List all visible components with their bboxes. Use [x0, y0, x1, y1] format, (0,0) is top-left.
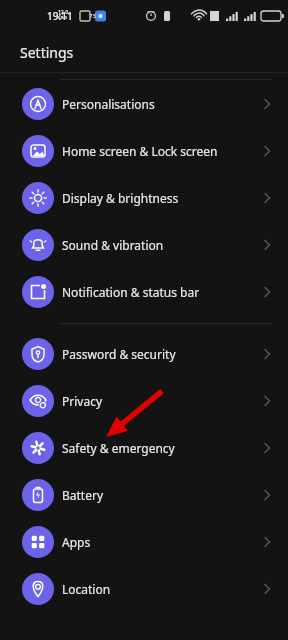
button[interactable]: Home screen & Lock screen	[0, 127, 288, 174]
staticText: Location	[62, 581, 111, 597]
button[interactable]: Display & brightness	[0, 174, 288, 221]
staticText: KB/S	[58, 15, 68, 20]
other: Open Sound & vibration	[260, 238, 274, 252]
other: Open Home screen & Lock screen	[260, 144, 274, 158]
other: Open Notification & status bar	[260, 285, 274, 299]
staticText: 19:11	[47, 9, 73, 23]
staticText: 73	[89, 12, 96, 20]
staticText: Battery	[62, 487, 104, 503]
other: Open Location	[260, 582, 274, 596]
other: Open Safety & emergency	[260, 441, 274, 455]
staticText: Privacy	[62, 393, 103, 409]
staticText: Password & security	[62, 346, 176, 362]
staticText: Notification & status bar	[62, 284, 200, 300]
other: Open Apps	[260, 535, 274, 549]
button[interactable]: Notification & status bar	[0, 268, 288, 315]
staticText: Home screen & Lock screen	[62, 143, 218, 159]
button[interactable]: Privacy	[0, 377, 288, 424]
other: Open Battery	[260, 488, 274, 502]
staticText: Apps	[62, 534, 91, 550]
button[interactable]: Location	[0, 565, 288, 612]
staticText: Display & brightness	[62, 190, 179, 206]
button[interactable]: Personalisations	[0, 80, 288, 127]
button[interactable]: Password & security	[0, 330, 288, 377]
button[interactable]: Apps	[0, 518, 288, 565]
staticText: Safety & emergency	[62, 440, 175, 456]
staticText: 12.0	[58, 9, 68, 16]
other: Open Privacy	[260, 394, 274, 408]
staticText: Personalisations	[62, 96, 155, 112]
button[interactable]: Sound & vibration	[0, 221, 288, 268]
staticText: Settings	[20, 43, 74, 62]
other: Open Personalisations	[260, 97, 274, 111]
other: Open Display & brightness	[260, 191, 274, 205]
button[interactable]: Battery	[0, 471, 288, 518]
button[interactable]: Safety & emergency	[0, 424, 288, 471]
staticText: Sound & vibration	[62, 237, 164, 253]
other: Open Password & security	[260, 347, 274, 361]
